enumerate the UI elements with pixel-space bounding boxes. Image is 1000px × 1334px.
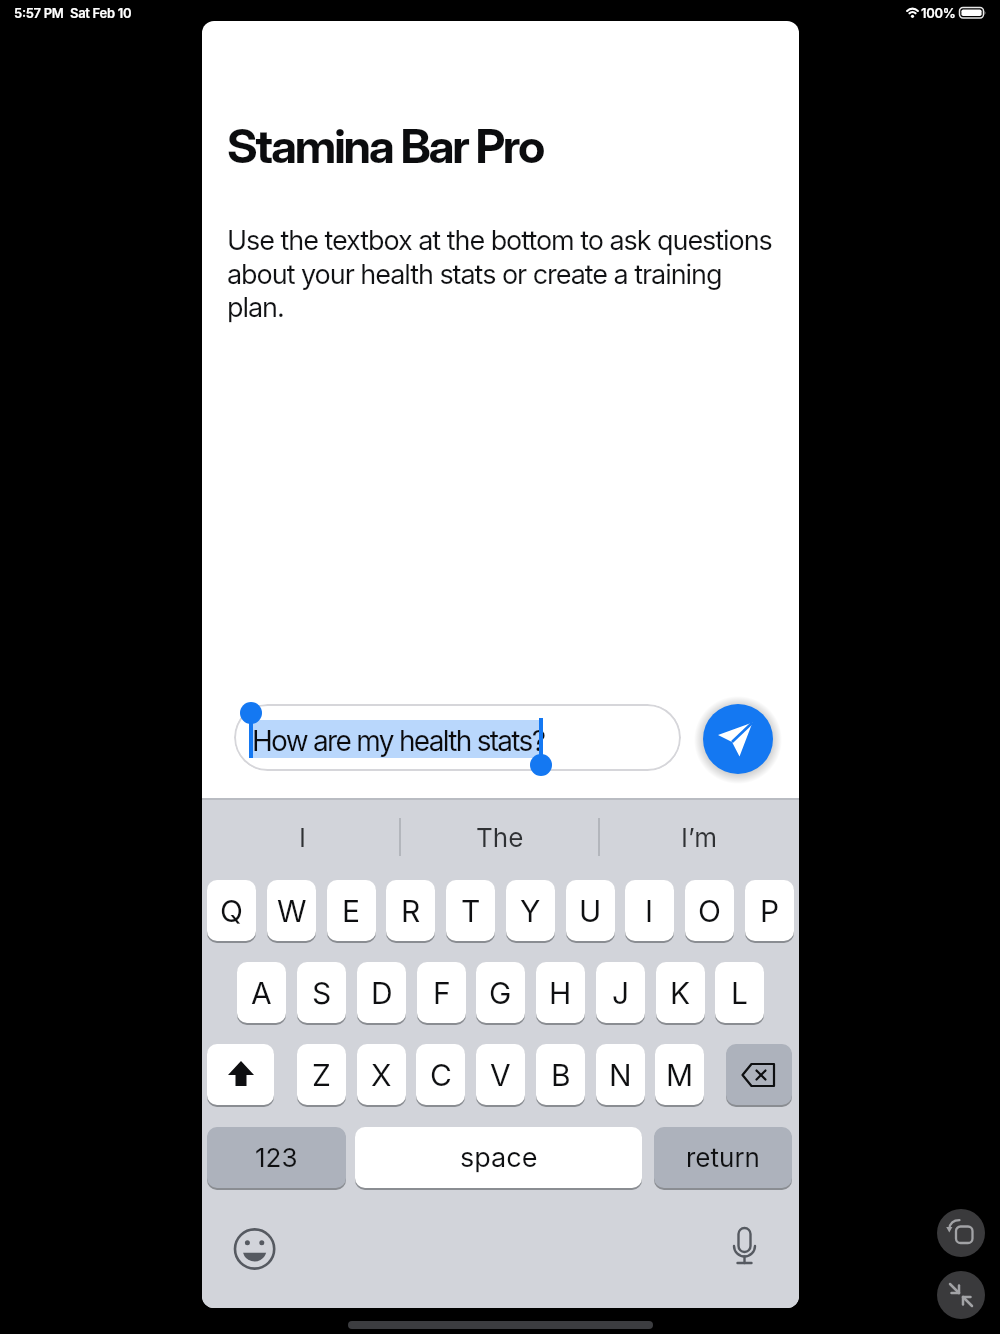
button[interactable]: Z: [297, 1044, 346, 1105]
staticText: A: [251, 975, 272, 1011]
staticText: T: [461, 893, 481, 929]
button[interactable]: K: [656, 962, 705, 1023]
staticText: 100%: [921, 5, 956, 21]
staticText: H: [549, 975, 572, 1011]
staticText: Y: [520, 893, 541, 929]
button[interactable]: [230, 1224, 280, 1274]
staticText: B: [551, 1057, 571, 1093]
button[interactable]: M: [655, 1044, 704, 1105]
staticText: V: [490, 1057, 511, 1093]
staticText: D: [371, 975, 393, 1011]
button[interactable]: C: [416, 1044, 465, 1105]
staticText: I’m: [681, 822, 717, 853]
staticText: Stamina Bar Pro: [227, 117, 544, 174]
staticText: S: [312, 975, 332, 1011]
button[interactable]: [722, 1222, 768, 1272]
button[interactable]: [703, 704, 773, 774]
button[interactable]: 123: [207, 1127, 346, 1188]
staticText: I: [645, 893, 654, 929]
staticText: L: [731, 975, 748, 1011]
staticText: space: [460, 1141, 538, 1174]
button[interactable]: [234, 704, 681, 771]
staticText: F: [433, 975, 451, 1011]
button[interactable]: P: [745, 880, 794, 941]
staticText: O: [698, 893, 721, 929]
staticText: Q: [220, 893, 243, 929]
staticText: U: [579, 893, 602, 929]
button[interactable]: G: [476, 962, 525, 1023]
staticText: 5:57 PM: [14, 5, 64, 21]
staticText: How are my health stats?: [252, 724, 545, 758]
button[interactable]: R: [386, 880, 435, 941]
staticText: 123: [255, 1142, 298, 1173]
staticText: G: [489, 975, 512, 1011]
staticText: J: [612, 975, 630, 1011]
button[interactable]: [726, 1044, 792, 1105]
button[interactable]: J: [596, 962, 645, 1023]
button[interactable]: O: [685, 880, 734, 941]
staticText: Use the textbox at the bottom to ask que…: [227, 224, 772, 323]
button[interactable]: D: [357, 962, 406, 1023]
button[interactable]: Y: [506, 880, 555, 941]
button[interactable]: [207, 1044, 274, 1105]
staticText: return: [686, 1142, 760, 1173]
button[interactable]: B: [536, 1044, 585, 1105]
button[interactable]: T: [446, 880, 495, 941]
staticText: E: [342, 893, 361, 929]
staticText: W: [277, 893, 307, 929]
staticText: N: [609, 1057, 632, 1093]
staticText: I: [299, 822, 306, 853]
button[interactable]: X: [357, 1044, 406, 1105]
staticText: M: [666, 1057, 694, 1093]
button[interactable]: space: [355, 1127, 642, 1188]
button[interactable]: H: [536, 962, 585, 1023]
button[interactable]: [937, 1209, 985, 1257]
staticText: The: [476, 822, 524, 853]
button[interactable]: V: [476, 1044, 525, 1105]
staticText: K: [670, 975, 691, 1011]
button[interactable]: I: [222, 806, 382, 868]
button[interactable]: I: [625, 880, 674, 941]
button[interactable]: W: [267, 880, 316, 941]
button[interactable]: [937, 1271, 985, 1319]
button[interactable]: Q: [207, 880, 256, 941]
button[interactable]: The: [420, 806, 580, 868]
staticText: X: [371, 1057, 392, 1093]
button[interactable]: N: [596, 1044, 645, 1105]
button[interactable]: S: [297, 962, 346, 1023]
button[interactable]: U: [566, 880, 615, 941]
button[interactable]: F: [417, 962, 466, 1023]
staticText: P: [760, 893, 780, 929]
staticText: Sat Feb 10: [70, 5, 132, 21]
staticText: C: [430, 1057, 452, 1093]
button[interactable]: I’m: [619, 806, 779, 868]
staticText: Z: [312, 1057, 331, 1093]
button[interactable]: return: [654, 1127, 792, 1188]
staticText: R: [401, 893, 421, 929]
button[interactable]: E: [327, 880, 376, 941]
button[interactable]: A: [237, 962, 286, 1023]
button[interactable]: L: [715, 962, 764, 1023]
